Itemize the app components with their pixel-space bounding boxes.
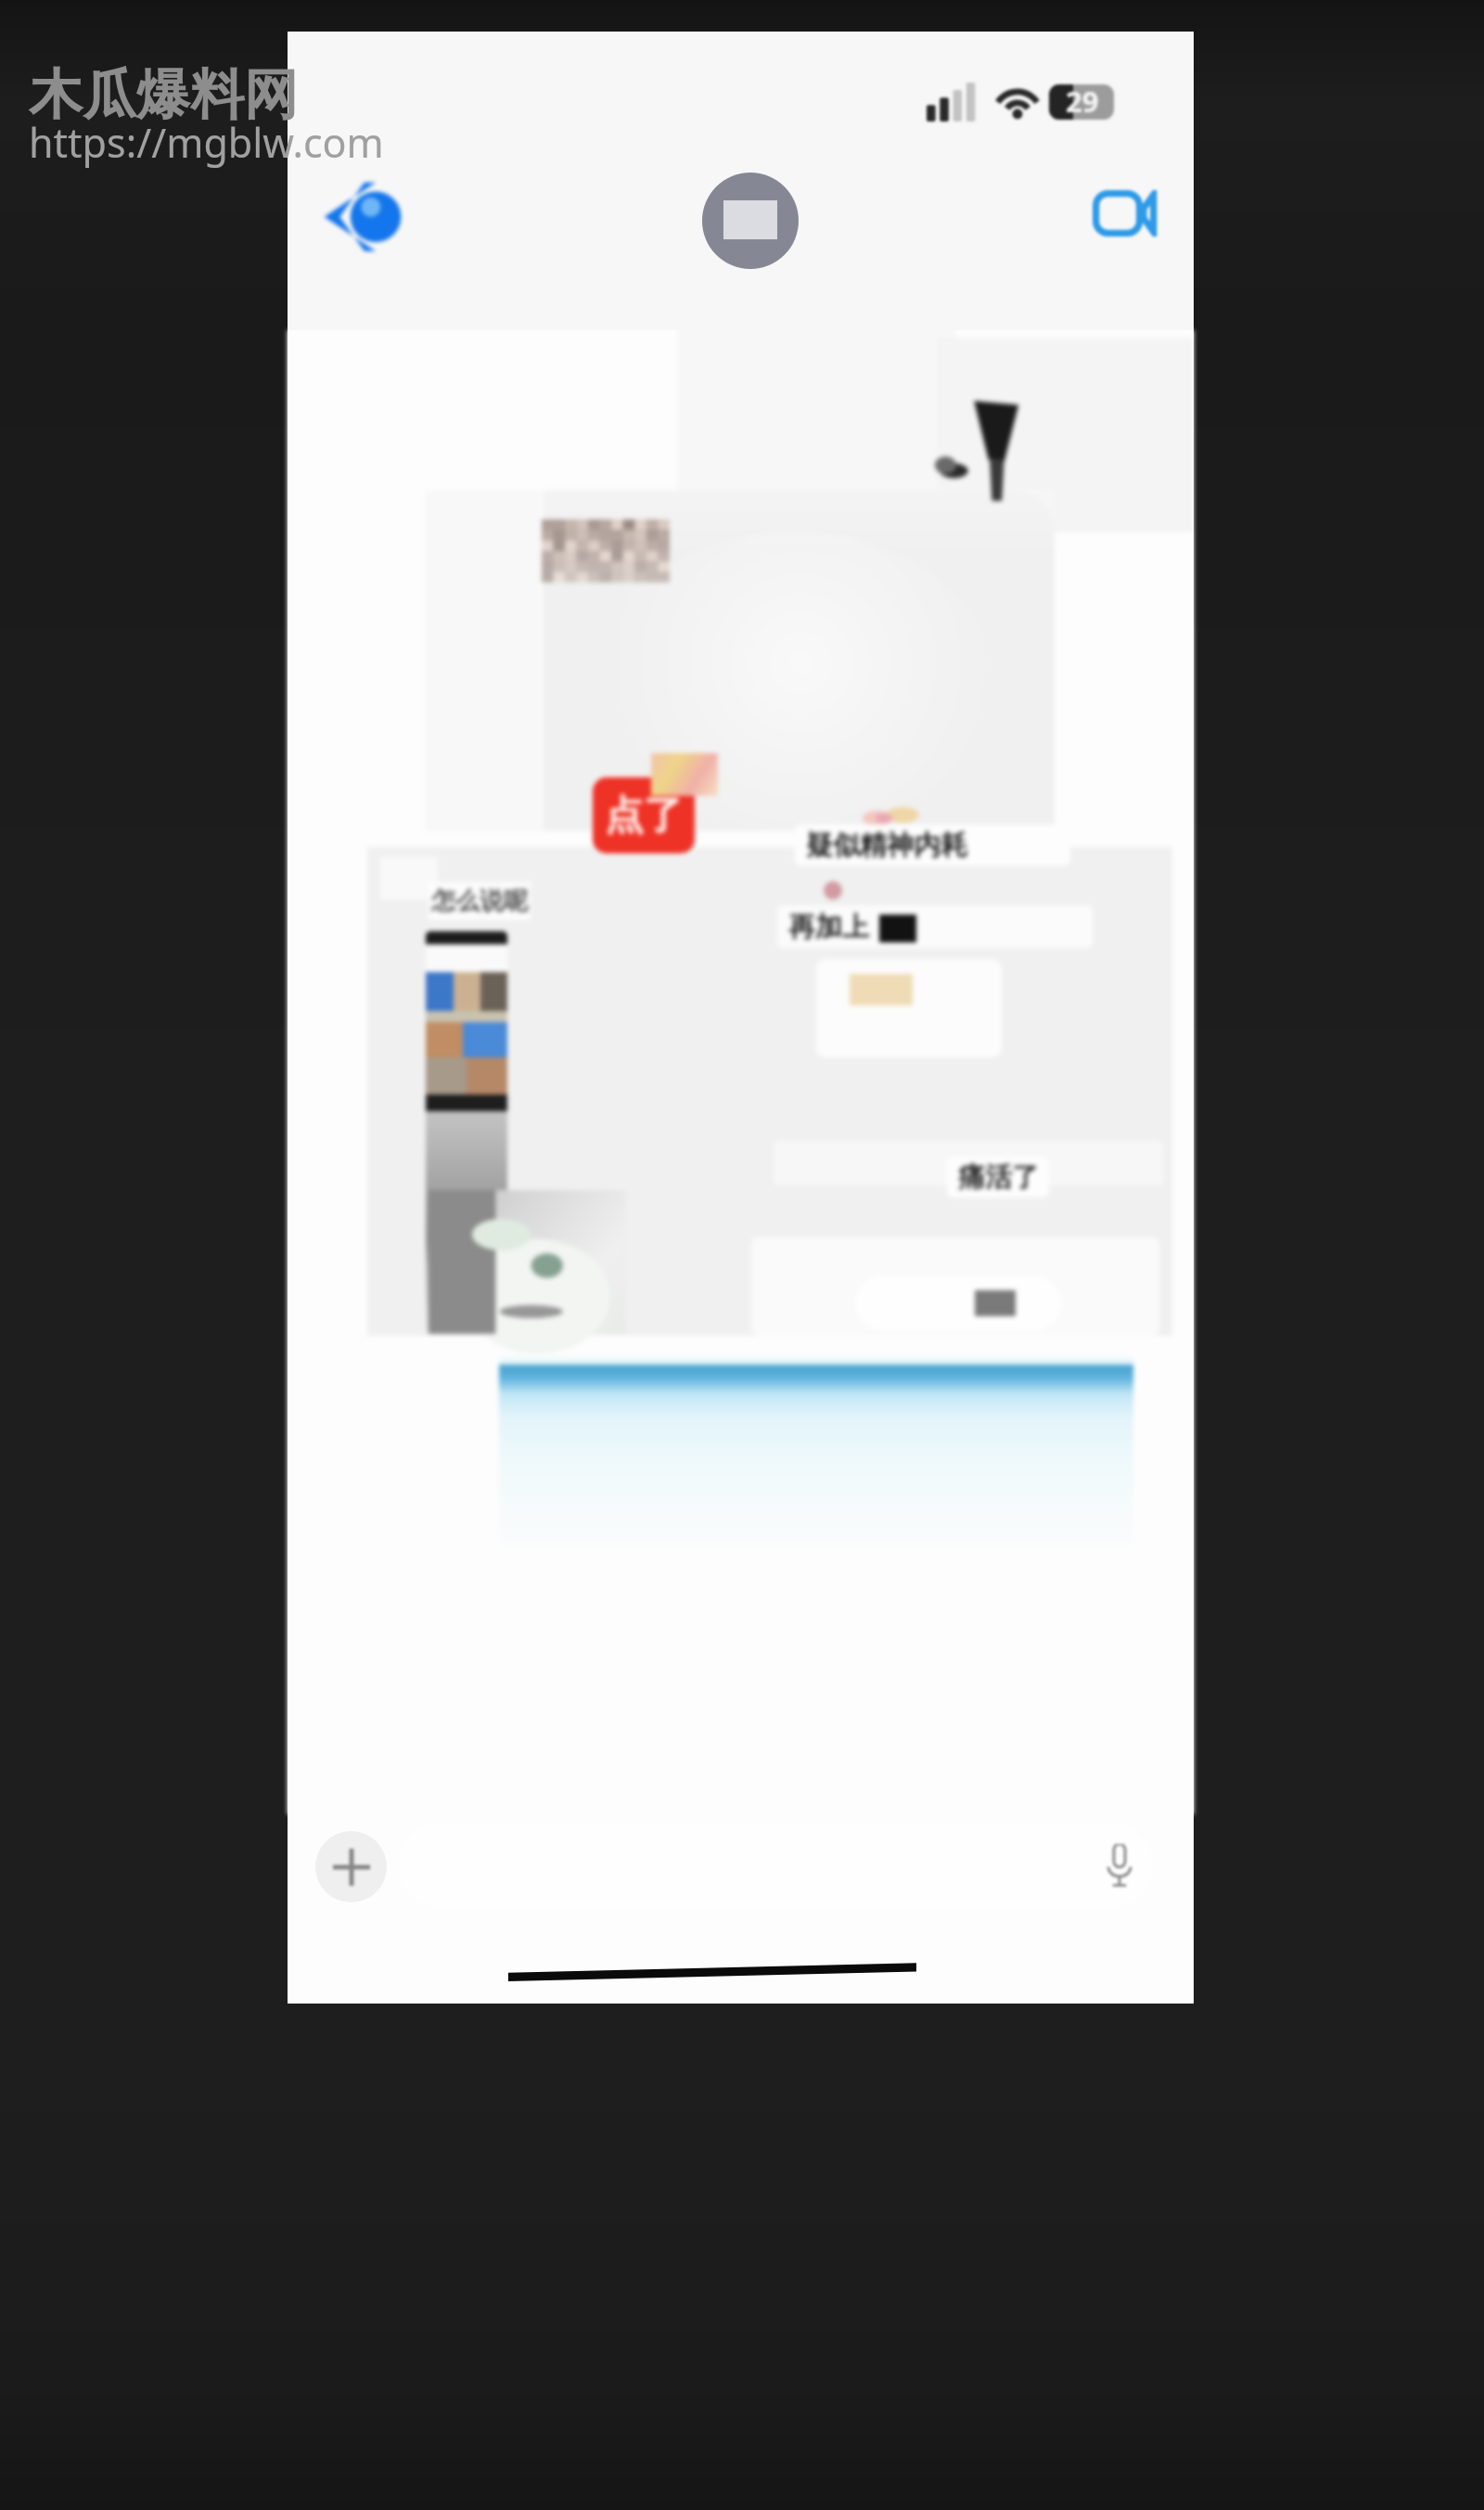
button[interactable]: Voice message <box>399 1823 1152 1908</box>
staticText: 怎么说呢 <box>431 886 528 916</box>
staticText: 痛活了 <box>958 1160 1039 1195</box>
button[interactable]: Voice message <box>1094 1840 1145 1890</box>
staticText: 29 <box>1066 82 1099 121</box>
button[interactable]: Add attachment <box>315 1831 387 1902</box>
button[interactable]: Video call <box>1067 155 1183 272</box>
button[interactable]: Contact profile photo <box>702 173 799 269</box>
staticText: 疑似精神内耗 <box>806 828 967 863</box>
button[interactable]: Back <box>301 153 425 277</box>
staticText: 木瓜爆料网 <box>29 61 298 129</box>
staticText: 再加上 <box>788 910 869 944</box>
staticText: https://mgblw.com <box>29 115 384 170</box>
staticText: 点了 <box>605 791 683 840</box>
